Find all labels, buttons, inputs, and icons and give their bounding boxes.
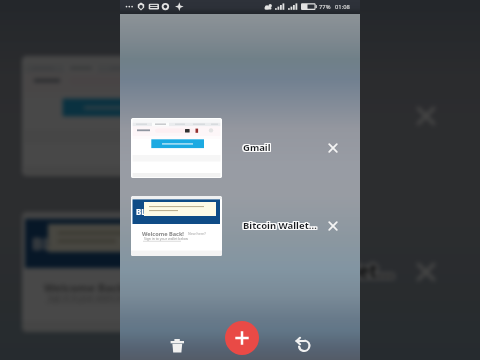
staticText: Bitcoin Wallet…	[244, 218, 318, 231]
staticText: Bitcoin Wallet…	[243, 220, 317, 233]
staticText: Bitcoin Wallet…	[244, 260, 392, 286]
staticText: Bitcoin Wallet…	[244, 258, 392, 284]
button[interactable]: Add	[225, 321, 259, 355]
staticText: Sign in to your wallet below	[48, 292, 136, 302]
staticText: Bitcoin Wallet…	[248, 260, 396, 286]
button[interactable]: BL	[22, 212, 204, 332]
staticText: Gmail	[246, 102, 302, 128]
button[interactable]: Bitcoin Wallet…	[243, 219, 317, 232]
staticText: BL	[136, 206, 146, 217]
staticText: Bitcoin Wallet…	[248, 256, 396, 282]
staticText: Bitcoin Wallet…	[246, 256, 394, 282]
button[interactable]: Dismiss Gmail	[326, 141, 340, 155]
staticText: Gmail	[242, 142, 270, 155]
staticText: Gmail	[244, 102, 300, 128]
staticText: Gmail	[246, 100, 302, 126]
staticText: Gmail	[243, 140, 271, 153]
staticText: Gmail	[246, 104, 302, 130]
staticText: Gmail	[244, 142, 272, 155]
staticText: Sign in to your wallet below	[144, 236, 188, 241]
staticText: Bitcoin Wallet…	[243, 219, 317, 232]
staticText: Gmail	[244, 100, 300, 126]
staticText: Bitcoin Wallet…	[244, 256, 392, 282]
staticText: Bitcoin Wallet…	[248, 258, 396, 284]
staticText: Gmail	[243, 142, 271, 155]
staticText: Bitcoin Wallet…	[242, 219, 316, 232]
button[interactable]: Clear all	[165, 332, 189, 356]
staticText: Welcome Back!	[142, 230, 184, 238]
button[interactable]: Gmail	[246, 102, 302, 128]
staticText: Gmail	[244, 140, 272, 153]
button[interactable]: Dismiss Bitcoin Wallet…	[412, 258, 440, 286]
staticText: 01:08	[335, 3, 350, 11]
staticText: BL	[32, 232, 52, 254]
staticText: Gmail	[242, 141, 270, 154]
button[interactable]: BL	[131, 196, 222, 256]
button[interactable]	[131, 118, 222, 178]
staticText: Gmail	[244, 141, 272, 154]
staticText: Gmail	[243, 141, 271, 154]
staticText: Bitcoin Wallet…	[243, 218, 317, 231]
staticText: Bitcoin Wallet…	[244, 220, 318, 233]
staticText: Bitcoin Wallet…	[246, 260, 394, 286]
staticText: Gmail	[248, 104, 304, 130]
button[interactable]: Back	[292, 331, 316, 355]
button[interactable]	[22, 56, 204, 176]
button[interactable]: Dismiss Bitcoin Wallet…	[326, 219, 340, 233]
staticText: Bitcoin Wallet…	[242, 220, 316, 233]
button[interactable]: Bitcoin Wallet…	[246, 258, 394, 284]
button[interactable]: Dismiss Gmail	[412, 102, 440, 130]
staticText: Gmail	[248, 100, 304, 126]
staticText: Bitcoin Wallet…	[242, 218, 316, 231]
staticText: Bitcoin Wallet…	[244, 219, 318, 232]
staticText: Bitcoin Wallet…	[246, 258, 394, 284]
button[interactable]: Gmail	[243, 141, 271, 154]
staticText: Gmail	[248, 102, 304, 128]
staticText: Welcome Back!	[44, 280, 128, 296]
staticText: Gmail	[242, 140, 270, 153]
staticText: 77%	[319, 3, 331, 11]
staticText: Gmail	[244, 104, 300, 130]
staticText: New here?	[188, 231, 206, 236]
